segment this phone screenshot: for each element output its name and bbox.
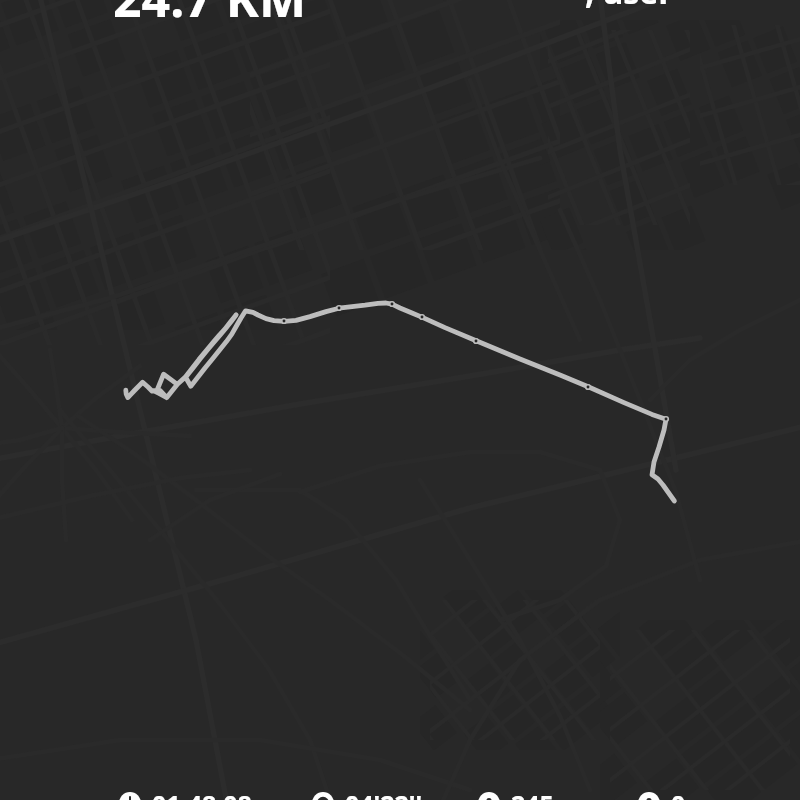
button[interactable]: Moving time: [119, 792, 252, 800]
staticText: 04'22'': [345, 787, 423, 800]
staticText: 245: [511, 787, 554, 800]
staticText: 24.7 KM: [113, 0, 307, 32]
button[interactable]: Average pace: [312, 792, 423, 800]
staticText: 0: [671, 787, 686, 800]
button[interactable]: Elevation gain: [478, 792, 554, 800]
staticText: , user: [585, 0, 673, 14]
button[interactable]: Calories: [638, 792, 686, 800]
staticText: 01:48:08: [152, 787, 252, 800]
